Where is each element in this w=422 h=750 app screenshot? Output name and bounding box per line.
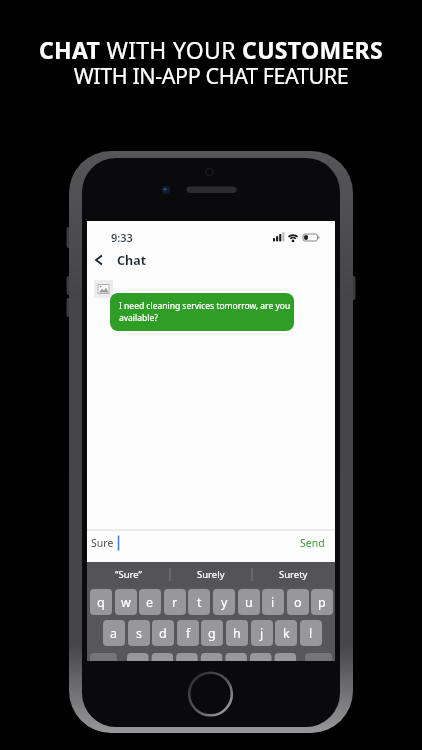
staticText: f (186, 625, 191, 642)
button[interactable]: f (177, 620, 199, 646)
button[interactable]: h (226, 620, 248, 646)
button[interactable]: k (275, 620, 297, 646)
staticText: q (97, 594, 105, 611)
button[interactable]: q (90, 589, 112, 615)
staticText: u (245, 594, 253, 611)
staticText: a (110, 625, 118, 642)
button[interactable]: p (311, 589, 333, 615)
staticText: Surely (197, 568, 225, 581)
staticText: j (260, 625, 264, 642)
button[interactable]: “Sure” (87, 562, 170, 587)
button[interactable]: d (152, 620, 174, 646)
staticText: e (146, 594, 154, 611)
button[interactable]: i (262, 589, 284, 615)
staticText: CHAT WITH YOUR CUSTOMERS (0, 34, 422, 65)
staticText: o (294, 594, 302, 611)
staticText: p (318, 594, 326, 611)
staticText: Surety (279, 568, 308, 581)
staticText: k (283, 625, 290, 642)
staticText: i (271, 594, 275, 611)
button[interactable]: r (164, 589, 186, 615)
button[interactable]: Surely (170, 562, 252, 587)
button[interactable]: s (128, 620, 150, 646)
staticText: WITH IN-APP CHAT FEATURE (0, 61, 422, 90)
button[interactable]: w (115, 589, 137, 615)
button[interactable]: I need cleaning services tomorrow, are y… (110, 293, 294, 331)
button[interactable]: y (213, 589, 235, 615)
button[interactable]: e (139, 589, 161, 615)
staticText: h (233, 625, 241, 642)
staticText: g (208, 625, 216, 642)
button[interactable]: Send (293, 533, 331, 553)
staticText: s (136, 625, 142, 642)
staticText: I need cleaning services tomorrow, are y… (119, 300, 291, 324)
staticText: “Sure” (115, 568, 142, 581)
staticText: r (172, 594, 178, 611)
staticText: t (197, 594, 202, 611)
button[interactable]: Chat (117, 252, 173, 268)
button[interactable]: u (238, 589, 260, 615)
staticText: Send (300, 536, 325, 550)
staticText: Sure (91, 536, 114, 550)
button[interactable]: o (287, 589, 309, 615)
staticText: d (159, 625, 167, 642)
button[interactable]: g (201, 620, 223, 646)
button[interactable]: t (188, 589, 210, 615)
staticText: Chat (117, 252, 147, 268)
staticText: w (121, 594, 131, 611)
staticText: l (309, 625, 313, 642)
button[interactable]: a (103, 620, 125, 646)
staticText: y (221, 594, 228, 611)
staticText: 9:33 (111, 230, 133, 245)
button[interactable]: l (300, 620, 322, 646)
button[interactable]: j (251, 620, 273, 646)
button[interactable]: Surety (252, 562, 335, 587)
